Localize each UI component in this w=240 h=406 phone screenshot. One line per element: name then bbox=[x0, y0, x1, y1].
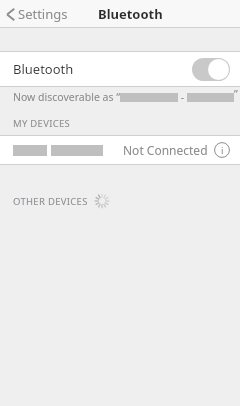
button[interactable]: Bluetooth bbox=[0, 51, 240, 87]
button[interactable]: Settings bbox=[0, 2, 76, 26]
button[interactable]: Bluetooth toggle, on bbox=[192, 58, 230, 81]
staticText: Bluetooth bbox=[13, 60, 74, 78]
staticText: Bluetooth bbox=[98, 5, 163, 23]
staticText: Settings bbox=[18, 5, 68, 23]
button[interactable]: More info bbox=[213, 141, 231, 159]
button[interactable]: Not Connected bbox=[0, 135, 240, 165]
staticText: MY DEVICES bbox=[13, 117, 71, 130]
staticText: OTHER DEVICES bbox=[13, 195, 88, 208]
staticText: Not Connected bbox=[123, 142, 208, 158]
staticText: i bbox=[221, 144, 224, 157]
staticText: Now discoverable as “ bbox=[13, 90, 120, 104]
staticText: - bbox=[178, 90, 187, 104]
staticText: ”. bbox=[234, 87, 240, 107]
other: Searching bbox=[94, 193, 110, 209]
